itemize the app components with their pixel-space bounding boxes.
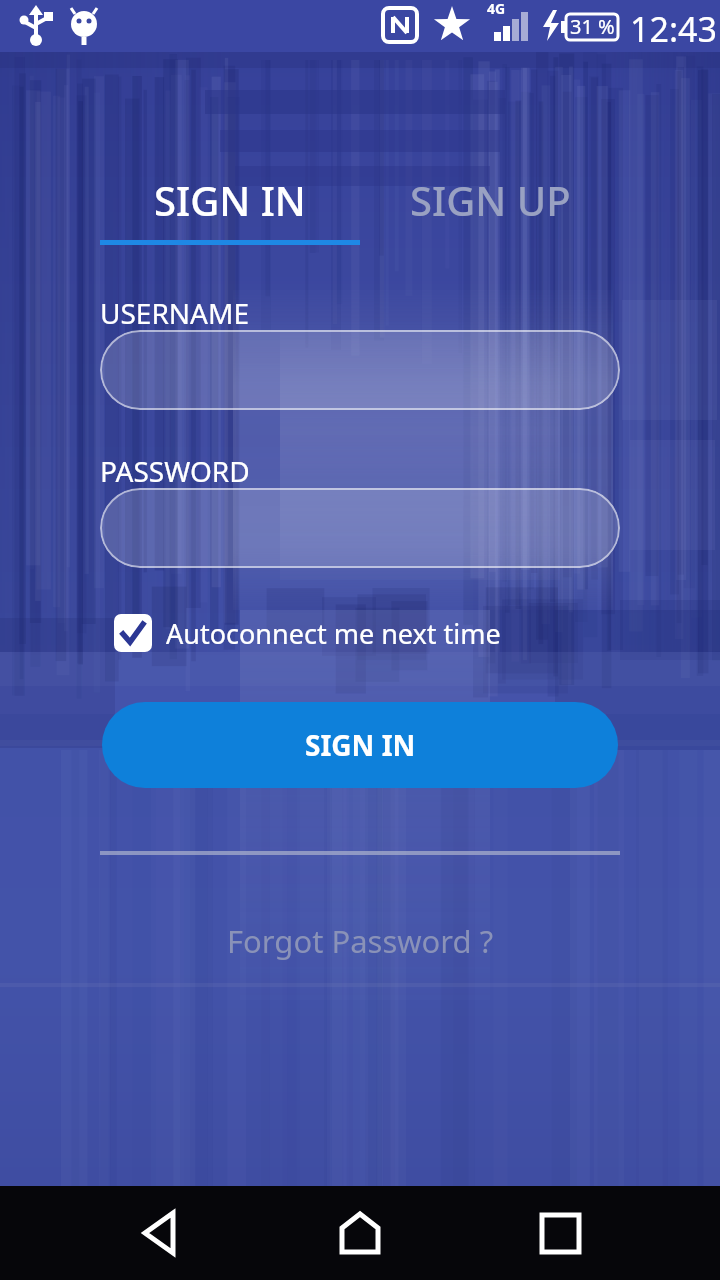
button[interactable]: SIGN IN — [100, 173, 360, 227]
button[interactable] — [320, 1193, 400, 1273]
staticText: SIGN IN — [154, 173, 306, 227]
button[interactable] — [100, 488, 620, 568]
button[interactable]: SIGN IN — [102, 702, 618, 788]
staticText: SIGN IN — [305, 726, 416, 764]
button[interactable] — [100, 330, 620, 410]
staticText: SIGN UP — [410, 173, 571, 227]
staticText: 4G — [487, 0, 506, 18]
button[interactable]: Autoconnect me next time — [114, 614, 501, 652]
button[interactable]: SIGN UP — [360, 173, 620, 227]
staticText: USERNAME — [100, 294, 249, 332]
staticText: 31 % — [570, 13, 615, 40]
staticText: Autoconnect me next time — [166, 615, 501, 652]
button[interactable] — [120, 1193, 200, 1273]
staticText: PASSWORD — [100, 452, 250, 490]
button[interactable]: Forgot Password ? — [227, 920, 494, 962]
button[interactable] — [520, 1193, 600, 1273]
staticText: 12:43 — [630, 6, 717, 52]
